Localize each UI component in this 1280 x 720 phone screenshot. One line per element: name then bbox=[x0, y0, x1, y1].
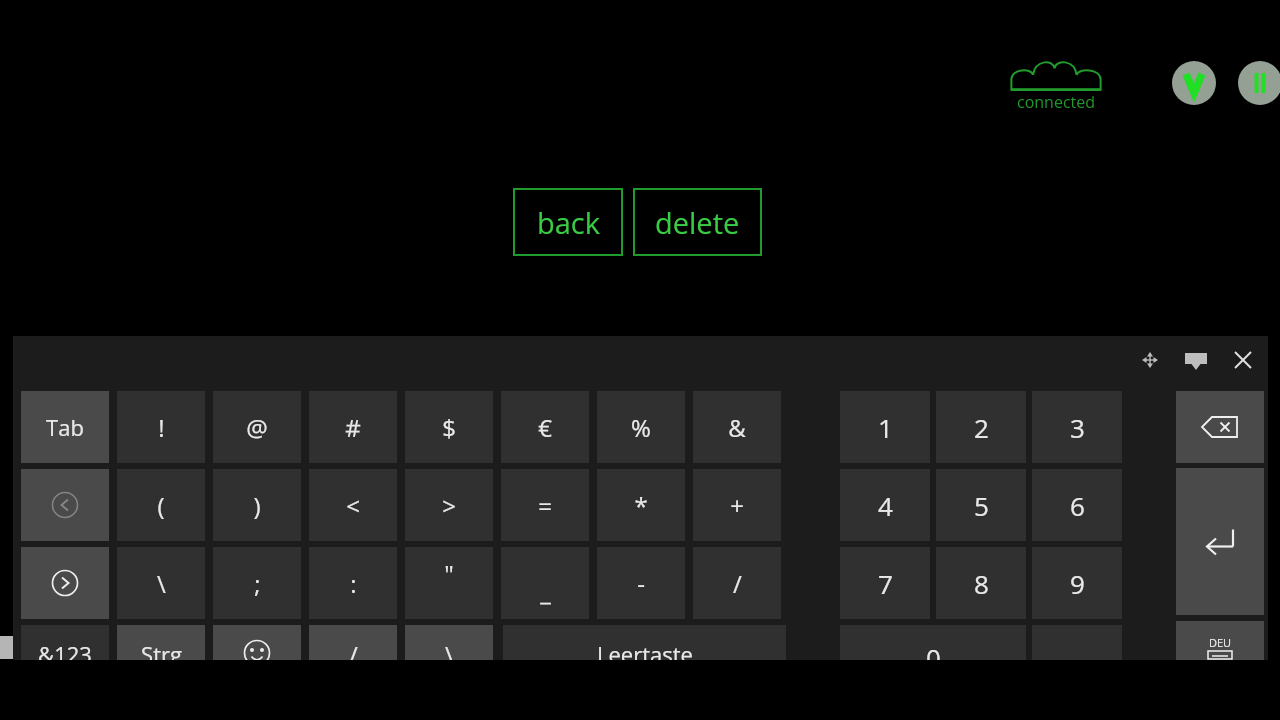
staticText: _ bbox=[540, 575, 551, 608]
staticText: \ bbox=[445, 638, 454, 660]
staticText: 6 bbox=[1070, 488, 1085, 523]
staticText: / bbox=[733, 567, 742, 600]
staticText: 7 bbox=[878, 566, 893, 601]
button[interactable]: : bbox=[309, 547, 397, 619]
button[interactable]: 5 bbox=[936, 469, 1026, 541]
staticText: % bbox=[631, 411, 651, 444]
button[interactable]: + bbox=[693, 469, 781, 541]
staticText: # bbox=[345, 411, 361, 444]
button[interactable]: Emoji bbox=[213, 625, 301, 660]
staticText: connected bbox=[1008, 91, 1104, 113]
staticText: + bbox=[730, 489, 744, 522]
button[interactable]: 7 bbox=[840, 547, 930, 619]
button[interactable]: Previous bbox=[21, 469, 109, 541]
staticText: $ bbox=[442, 411, 456, 444]
staticText: DEU bbox=[1176, 635, 1264, 650]
staticText: ( bbox=[157, 489, 165, 522]
button[interactable]: ) bbox=[213, 469, 301, 541]
staticText: 9 bbox=[1070, 566, 1085, 601]
button[interactable]: Cloud connected bbox=[1008, 55, 1104, 111]
staticText: € bbox=[538, 411, 552, 444]
button[interactable]: / bbox=[309, 625, 397, 660]
staticText: = bbox=[538, 489, 552, 522]
button[interactable]: 9 bbox=[1032, 547, 1122, 619]
button[interactable]: Leertaste bbox=[503, 625, 786, 660]
staticText: 4 bbox=[878, 488, 893, 523]
staticText: - bbox=[637, 567, 645, 600]
staticText: delete bbox=[655, 203, 740, 242]
staticText: 3 bbox=[1070, 410, 1085, 445]
button[interactable]: Strg bbox=[117, 625, 205, 660]
staticText: " bbox=[444, 557, 454, 590]
button[interactable]: \ bbox=[405, 625, 493, 660]
button[interactable]: Next bbox=[21, 547, 109, 619]
button[interactable]: " bbox=[405, 547, 493, 619]
staticText: < bbox=[346, 489, 360, 522]
button[interactable]: > bbox=[405, 469, 493, 541]
staticText: 5 bbox=[974, 488, 989, 523]
button[interactable]: $ bbox=[405, 391, 493, 463]
staticText: Strg bbox=[141, 639, 182, 660]
button[interactable]: \ bbox=[117, 547, 205, 619]
button[interactable]: Enter bbox=[1176, 468, 1264, 615]
button[interactable]: / bbox=[693, 547, 781, 619]
button[interactable]: 1 bbox=[840, 391, 930, 463]
staticText: \ bbox=[157, 567, 166, 600]
button[interactable]: Close keyboard bbox=[1229, 346, 1257, 374]
button[interactable]: # bbox=[309, 391, 397, 463]
button[interactable]: % bbox=[597, 391, 685, 463]
staticText: & bbox=[728, 411, 746, 444]
button[interactable]: Backspace bbox=[1176, 391, 1264, 463]
staticText: @ bbox=[246, 411, 268, 444]
button[interactable]: € bbox=[501, 391, 589, 463]
staticText: Tab bbox=[46, 412, 84, 442]
button[interactable]: Volume bbox=[1172, 61, 1216, 105]
staticText: ! bbox=[158, 411, 165, 444]
staticText: 1 bbox=[878, 410, 893, 445]
button[interactable]: < bbox=[309, 469, 397, 541]
staticText: ; bbox=[254, 567, 261, 600]
staticText: * bbox=[634, 489, 648, 522]
button[interactable]: delete bbox=[633, 188, 762, 256]
button[interactable]: 6 bbox=[1032, 469, 1122, 541]
button[interactable]: ( bbox=[117, 469, 205, 541]
button[interactable]: 3 bbox=[1032, 391, 1122, 463]
button[interactable]: & bbox=[693, 391, 781, 463]
button[interactable]: Dock keyboard bbox=[1182, 346, 1210, 374]
staticText: ) bbox=[253, 489, 261, 522]
button[interactable]: 0 bbox=[840, 625, 1026, 660]
staticText: 0 bbox=[926, 640, 941, 660]
staticText: Leertaste bbox=[597, 639, 693, 660]
button[interactable]: 2 bbox=[936, 391, 1026, 463]
staticText: : bbox=[350, 567, 357, 600]
button[interactable]: _ bbox=[501, 547, 589, 619]
button[interactable]: = bbox=[501, 469, 589, 541]
button[interactable]: ; bbox=[213, 547, 301, 619]
button[interactable]: &123 bbox=[21, 625, 109, 660]
staticText: / bbox=[349, 638, 358, 660]
button[interactable]: - bbox=[597, 547, 685, 619]
button[interactable]: Language DEU bbox=[1176, 621, 1264, 660]
button[interactable]: back bbox=[513, 188, 623, 256]
staticText: 8 bbox=[974, 566, 989, 601]
button[interactable]: @ bbox=[213, 391, 301, 463]
button[interactable]: Tab bbox=[21, 391, 109, 463]
button[interactable]: 4 bbox=[840, 469, 930, 541]
button[interactable]: Pause bbox=[1238, 61, 1280, 105]
button[interactable]: ! bbox=[117, 391, 205, 463]
button[interactable]: Move keyboard bbox=[1136, 346, 1164, 374]
button[interactable]: 8 bbox=[936, 547, 1026, 619]
button[interactable]: * bbox=[597, 469, 685, 541]
staticText: > bbox=[442, 489, 456, 522]
staticText: &123 bbox=[38, 639, 92, 660]
staticText: back bbox=[537, 203, 600, 242]
staticText: 2 bbox=[974, 410, 989, 445]
